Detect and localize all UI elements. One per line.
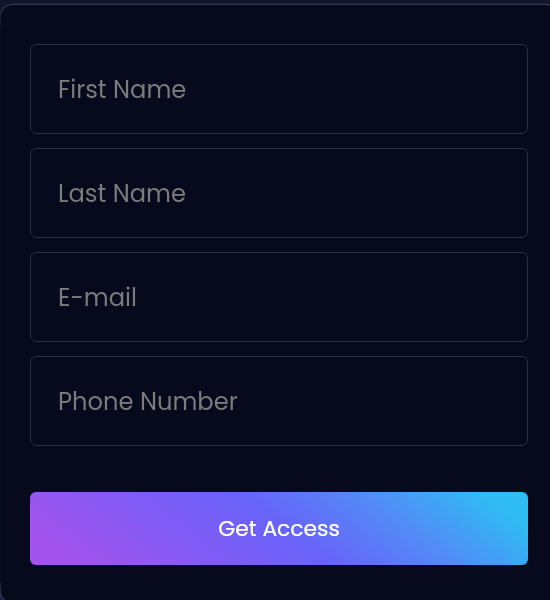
staticText: Get Access <box>218 513 340 544</box>
staticText: Phone Number <box>58 385 238 419</box>
button[interactable]: First Name <box>30 44 528 134</box>
staticText: First Name <box>58 73 187 107</box>
staticText: Last Name <box>58 177 186 211</box>
staticText: E-mail <box>58 281 137 315</box>
button[interactable]: E-mail <box>30 252 528 342</box>
button[interactable]: Last Name <box>30 148 528 238</box>
button[interactable]: Get Access <box>30 492 528 565</box>
button[interactable]: Phone Number <box>30 356 528 446</box>
